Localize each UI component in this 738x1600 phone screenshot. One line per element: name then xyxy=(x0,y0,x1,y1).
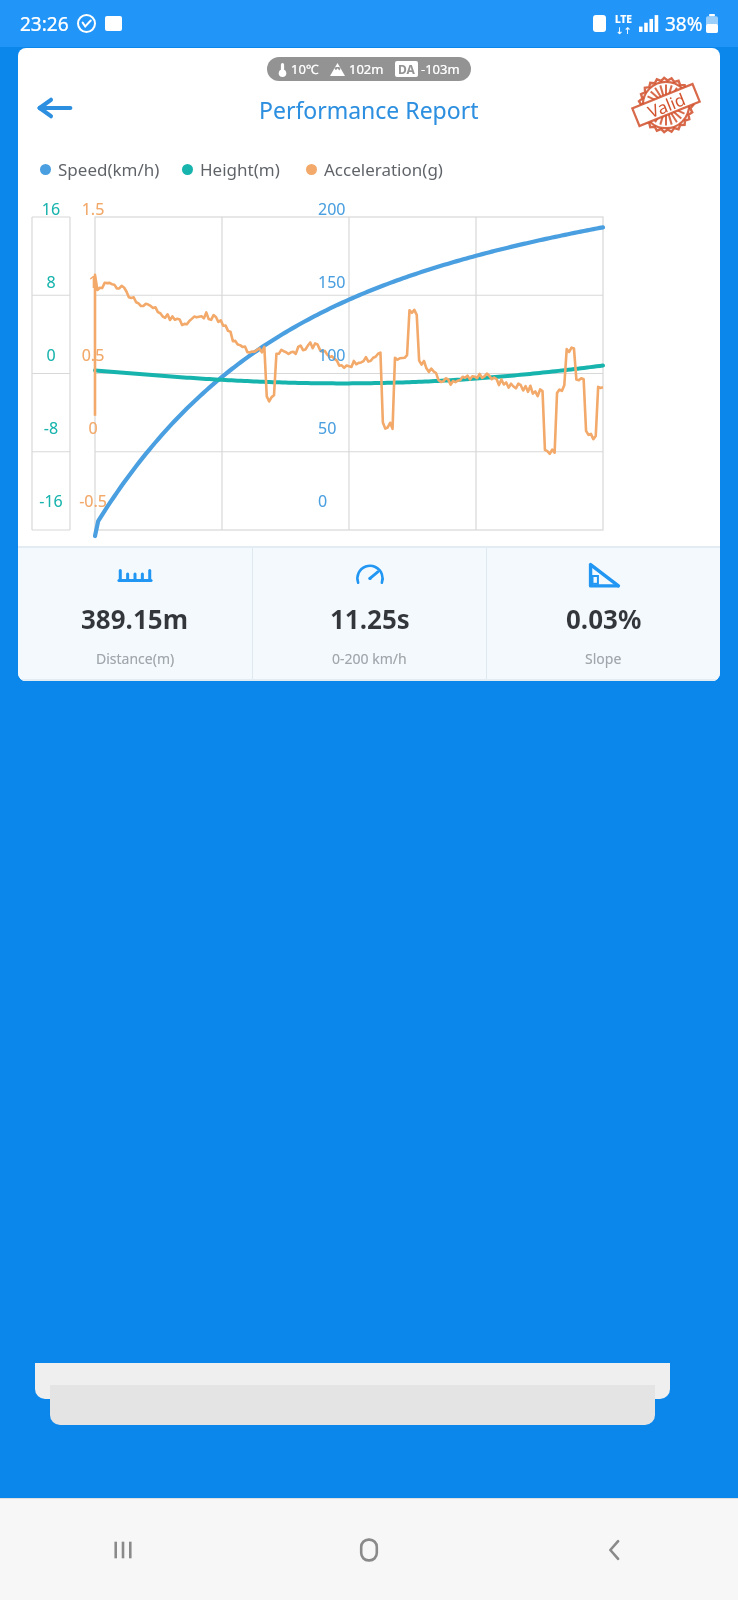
button[interactable]: Home xyxy=(246,1499,492,1600)
staticText: -16 xyxy=(32,490,70,512)
staticText: Valid xyxy=(644,87,689,123)
staticText: 0 xyxy=(318,490,328,512)
staticText: Distance(m) xyxy=(96,649,175,668)
staticText: DA xyxy=(398,61,415,77)
staticText: 16 xyxy=(32,198,70,220)
button[interactable]: Back xyxy=(31,84,79,132)
staticText: ↓ xyxy=(616,26,624,36)
staticText: 8 xyxy=(32,271,70,293)
staticText: 0-200 km/h xyxy=(332,649,407,668)
staticText: -8 xyxy=(32,417,70,439)
staticText: Speed(km/h) xyxy=(58,158,160,181)
staticText: 200 xyxy=(318,198,346,220)
staticText: 150 xyxy=(318,271,346,293)
staticText: 0.5 xyxy=(71,344,115,366)
staticText: Acceleration(g) xyxy=(324,158,443,181)
staticText: Height(m) xyxy=(200,158,280,181)
staticText: 50 xyxy=(318,417,337,439)
staticText: 1 xyxy=(71,271,115,293)
staticText: 11.25s xyxy=(330,601,410,636)
staticText: -103m xyxy=(421,60,460,78)
button[interactable]: 11.25s xyxy=(253,546,486,681)
button[interactable]: 10℃ xyxy=(278,57,460,81)
button[interactable]: 0.03% xyxy=(487,546,720,681)
staticText: -0.5 xyxy=(71,490,115,512)
staticText: 100 xyxy=(318,344,346,366)
staticText: 10℃ xyxy=(291,60,319,78)
staticText: 102m xyxy=(349,60,384,78)
staticText: Slope xyxy=(585,649,622,668)
staticText: 0.03% xyxy=(566,601,642,636)
staticText: 0 xyxy=(71,417,115,439)
staticText: 1.5 xyxy=(71,198,115,220)
staticText: LTE xyxy=(615,12,632,26)
staticText: 23:26 xyxy=(20,11,69,37)
staticText: 389.15m xyxy=(81,601,189,636)
button[interactable]: Recents xyxy=(0,1499,246,1600)
staticText: 0 xyxy=(32,344,70,366)
staticText: Performance Report xyxy=(259,94,479,125)
staticText: ↑ xyxy=(624,26,632,36)
button[interactable]: Back xyxy=(492,1499,738,1600)
staticText: 38% xyxy=(665,11,703,37)
button[interactable]: 389.15m xyxy=(18,546,252,681)
